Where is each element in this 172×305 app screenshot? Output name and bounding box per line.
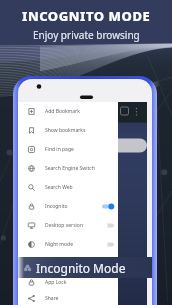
button[interactable]: Incognito [18,197,118,216]
button[interactable]: Search Engine Switch [18,159,118,178]
staticText: Night mode [45,241,102,248]
button[interactable]: Search Web [18,178,118,197]
button[interactable]: Profile [18,254,118,273]
staticText: App Lock [45,279,114,286]
staticText: Search Engine Switch [45,165,114,172]
button[interactable]: Show bookmarks [18,121,118,140]
staticText: Show bookmarks [45,127,114,134]
other: Incognito [23,263,32,272]
button[interactable]: Add Bookmark [18,102,118,121]
staticText: Search Web [45,184,114,191]
staticText: Find in page [45,146,114,153]
button[interactable]: Share [18,292,118,305]
staticText: Profile [45,260,114,267]
staticText: Incognito [45,203,102,210]
button[interactable]: Incognito [18,257,152,278]
button[interactable]: Night mode [18,235,118,254]
staticText: Enjoy private browsing [33,28,140,42]
staticText: Desktop version [45,222,102,229]
staticText: INCOGNITO MODE [22,7,151,25]
staticText: Incognito Mode [36,260,126,276]
button[interactable]: App Lock [18,273,118,292]
staticText: Add Bookmark [45,108,114,115]
staticText: Share [45,295,114,302]
button[interactable]: Find in page [18,140,118,159]
button[interactable]: Desktop version [18,216,118,235]
